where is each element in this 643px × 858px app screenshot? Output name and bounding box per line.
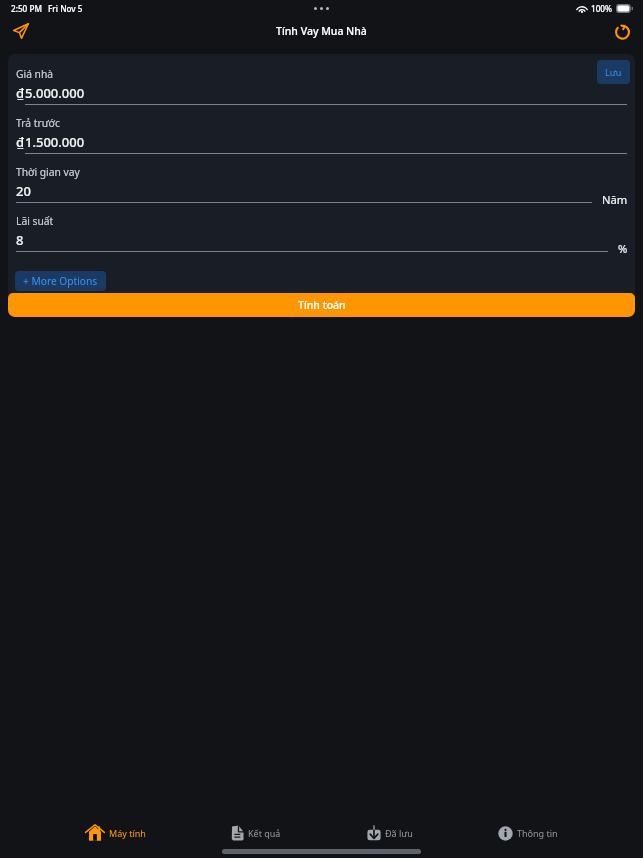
button[interactable]: Kết quả — [231, 817, 281, 849]
staticText: Thông tin — [517, 827, 558, 839]
staticText: % — [618, 241, 628, 256]
staticText: Tính toán — [298, 298, 346, 312]
staticText: Fri Nov 5 — [48, 3, 83, 14]
staticText: Kết quả — [248, 827, 281, 839]
button[interactable]: Reset — [607, 16, 637, 46]
button[interactable]: + More Options — [15, 271, 106, 291]
button[interactable]: Lưu — [597, 60, 630, 84]
staticText: ₫ — [16, 84, 25, 102]
button[interactable]: Đã lưu — [367, 817, 413, 849]
button[interactable]: Máy tính — [85, 817, 146, 849]
staticText: 1.500.000 — [25, 133, 85, 151]
staticText: 100% — [591, 3, 613, 14]
staticText: Đã lưu — [385, 827, 413, 839]
staticText: Thời gian vay — [16, 165, 80, 179]
staticText: 5.000.000 — [25, 84, 85, 102]
button[interactable]: Tính toán — [8, 293, 635, 317]
staticText: ₫ — [16, 133, 25, 151]
staticText: Máy tính — [109, 827, 146, 839]
staticText: Tính Vay Mua Nhà — [276, 24, 367, 38]
button[interactable]: Thông tin — [498, 817, 558, 849]
staticText: + More Options — [23, 274, 98, 288]
staticText: 2:50 PM — [11, 3, 42, 14]
staticText: 20 — [16, 182, 31, 200]
staticText: Lưu — [605, 66, 622, 78]
staticText: 8 — [16, 231, 24, 249]
staticText: Năm — [602, 192, 628, 207]
button[interactable]: Send — [6, 16, 36, 46]
staticText: Lãi suất — [16, 214, 54, 228]
staticText: Giá nhà — [16, 67, 54, 81]
staticText: Trả trước — [16, 116, 60, 130]
